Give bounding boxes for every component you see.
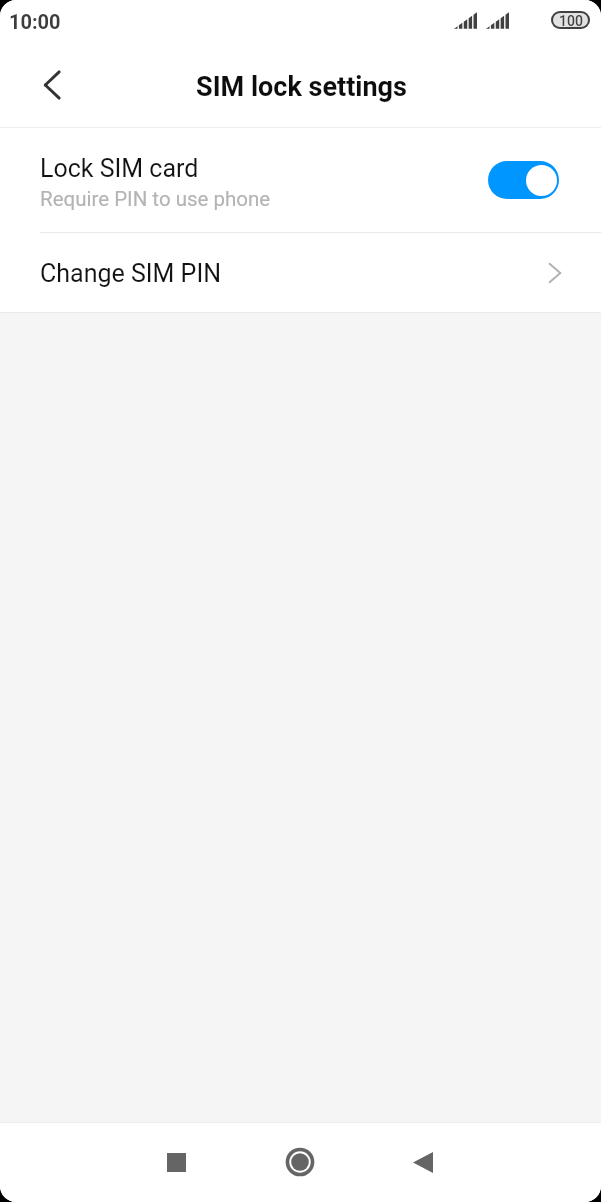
button[interactable]: Home xyxy=(272,1134,328,1190)
button[interactable]: Lock SIM card xyxy=(0,128,601,232)
button[interactable]: Recent apps xyxy=(148,1134,204,1190)
staticText: Change SIM PIN xyxy=(40,259,222,288)
button[interactable]: Lock SIM card xyxy=(488,161,559,199)
button[interactable]: Back xyxy=(24,58,82,116)
staticText: Require PIN to use phone xyxy=(40,187,271,211)
staticText: 10:00 xyxy=(9,10,61,33)
staticText: SIM lock settings xyxy=(196,71,407,103)
staticText: 100 xyxy=(559,13,583,27)
button[interactable]: Change SIM PIN xyxy=(0,233,601,312)
button[interactable]: Back xyxy=(395,1134,451,1190)
staticText: Lock SIM card xyxy=(40,154,199,183)
